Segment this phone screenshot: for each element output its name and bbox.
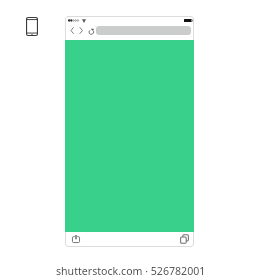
button[interactable]: [96, 26, 191, 35]
button[interactable]: Share: [72, 234, 80, 243]
button[interactable]: Forward: [77, 26, 86, 35]
button[interactable]: Back: [68, 26, 77, 35]
button[interactable]: Reload: [87, 27, 96, 36]
button[interactable]: Tabs: [180, 234, 189, 244]
staticText: shutterstock.com · 526782001: [56, 264, 206, 278]
